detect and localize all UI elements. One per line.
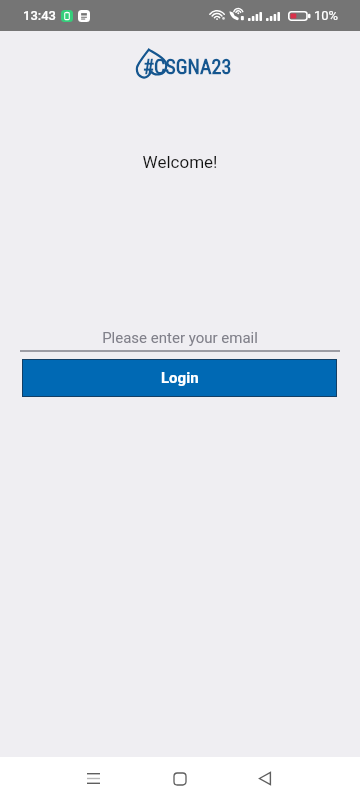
button[interactable]: Back (241, 757, 289, 800)
staticText: #CSGNA23 (143, 55, 232, 78)
staticText: Welcome! (0, 152, 360, 172)
button[interactable]: Recent apps (69, 757, 117, 800)
button[interactable]: Login (23, 360, 336, 396)
staticText: 10% (314, 8, 339, 23)
staticText: Please enter your email (0, 329, 360, 347)
staticText: Login (161, 369, 199, 387)
staticText: 13:43 (23, 8, 57, 23)
button[interactable]: Home (156, 757, 204, 800)
